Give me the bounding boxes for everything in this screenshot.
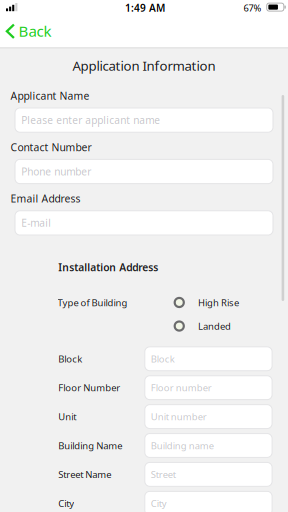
button[interactable]: Street [145, 462, 272, 486]
staticText: Type of Building [58, 296, 128, 309]
button[interactable]: City [145, 491, 272, 512]
staticText: Unit number [151, 410, 207, 423]
staticText: City [151, 497, 167, 510]
staticText: Street Name [58, 468, 111, 481]
staticText: Block [58, 352, 82, 365]
staticText: Building Name [58, 439, 122, 452]
staticText: Street [151, 468, 176, 481]
staticText: Please enter applicant name [21, 113, 160, 127]
button[interactable]: Back [0, 16, 288, 46]
button[interactable]: Landed [174, 320, 274, 332]
staticText: Back [18, 21, 51, 41]
staticText: City [58, 497, 74, 510]
button[interactable]: Building name [145, 433, 272, 457]
staticText: Installation Address [58, 261, 158, 274]
button[interactable]: High Rise [174, 296, 274, 309]
staticText: Application Information [72, 57, 215, 74]
staticText: Applicant Name [11, 89, 90, 103]
staticText: Floor Number [58, 381, 120, 394]
button[interactable]: E-mail [15, 211, 273, 235]
button[interactable]: Block [145, 347, 272, 371]
staticText: Unit [58, 410, 76, 423]
button[interactable]: Floor number [145, 376, 272, 400]
staticText: Contact Number [11, 140, 92, 154]
button[interactable]: Please enter applicant name [15, 108, 273, 132]
staticText: Building name [151, 439, 214, 452]
staticText: High Rise [198, 296, 239, 309]
button[interactable]: Phone number [15, 159, 273, 184]
staticText: Phone number [21, 165, 91, 178]
staticText: Floor number [151, 381, 212, 394]
staticText: 67% [243, 2, 261, 14]
staticText: Landed [198, 320, 231, 332]
staticText: Block [151, 352, 175, 365]
button[interactable]: Unit number [145, 405, 272, 428]
staticText: Email Address [11, 192, 81, 205]
staticText: 1:49 AM [125, 1, 165, 15]
staticText: E-mail [21, 216, 51, 230]
